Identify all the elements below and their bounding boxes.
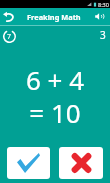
staticText: 3: [100, 28, 106, 42]
staticText: Freaking Math: [27, 12, 81, 22]
button[interactable]: Correct: [7, 147, 50, 179]
button[interactable]: Back: [0, 8, 17, 25]
staticText: = 10: [0, 95, 110, 130]
staticText: 6 + 4: [0, 62, 110, 97]
button[interactable]: Sound: [91, 8, 108, 25]
button[interactable]: Wrong: [59, 147, 103, 179]
staticText: 8:30: [98, 1, 109, 8]
staticText: 7: [7, 32, 12, 42]
